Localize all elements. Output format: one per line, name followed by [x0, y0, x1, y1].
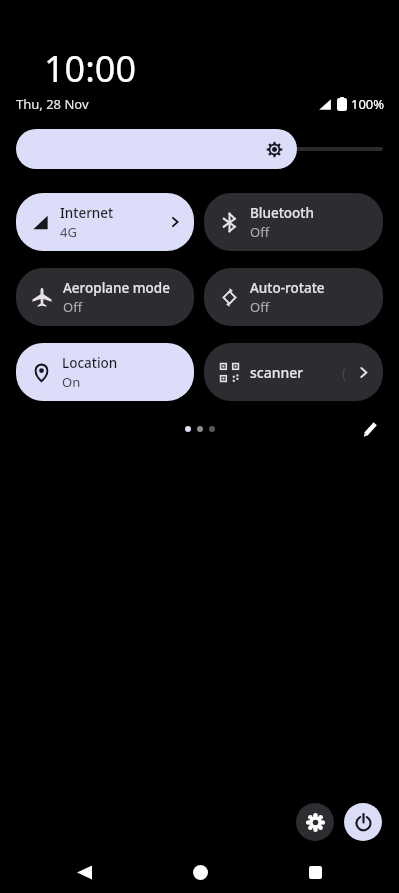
button[interactable]: Recent apps	[295, 852, 335, 892]
staticText: Thu, 28 Nov	[16, 95, 89, 113]
staticText: (	[342, 363, 347, 382]
staticText: 4G	[60, 223, 77, 241]
staticText: Off	[63, 298, 83, 316]
button[interactable]: Internet	[16, 193, 194, 251]
button[interactable]: Back	[64, 852, 104, 892]
staticText: Auto-rotate	[250, 279, 325, 297]
button[interactable]: Edit tiles	[357, 417, 383, 441]
staticText: Location	[62, 354, 118, 372]
button[interactable]: scanner	[204, 343, 383, 401]
staticText: Off	[250, 298, 270, 316]
button[interactable]: Brightness	[16, 129, 297, 169]
staticText: On	[62, 373, 81, 391]
staticText: 10:00	[44, 44, 137, 93]
button[interactable]: Location	[16, 343, 194, 401]
staticText: Bluetooth	[250, 204, 314, 222]
staticText: Aeroplane mode	[63, 279, 170, 297]
staticText: Internet	[60, 204, 114, 222]
staticText: Off	[250, 223, 270, 241]
button[interactable]: Settings	[296, 803, 334, 841]
button[interactable]: Bluetooth	[204, 193, 383, 251]
staticText: scanner	[250, 363, 304, 382]
button[interactable]: Auto-rotate	[204, 268, 383, 326]
button[interactable]: Home	[180, 852, 220, 892]
other: Brightness	[266, 141, 283, 158]
button[interactable]: Aeroplane mode	[16, 268, 194, 326]
button[interactable]: Power	[344, 803, 382, 841]
staticText: 100%	[351, 95, 385, 113]
